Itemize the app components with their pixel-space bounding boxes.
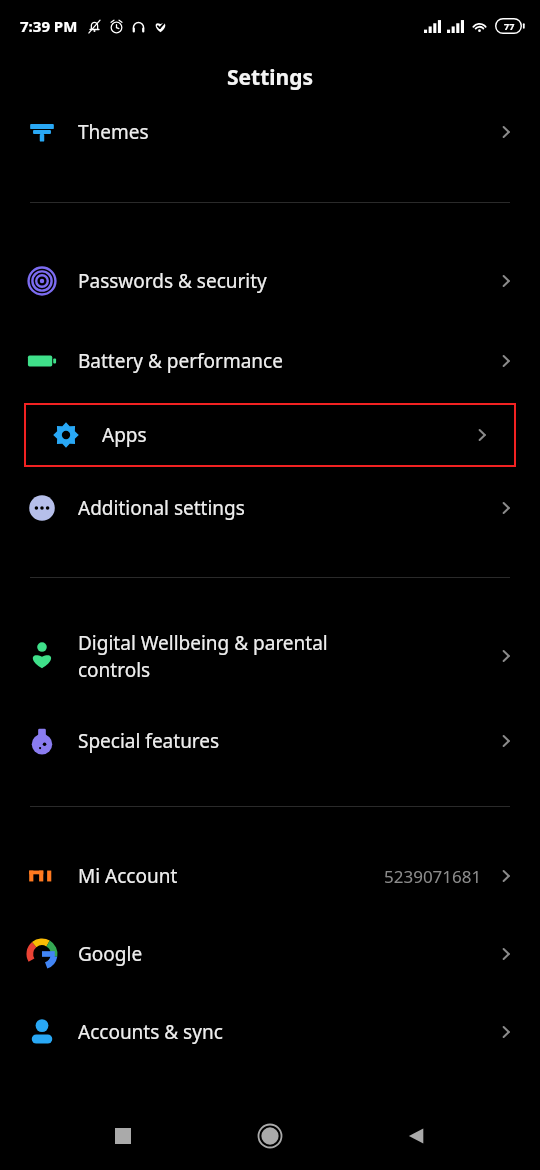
staticText: 5239071681 xyxy=(384,865,482,888)
staticText: Battery & performance xyxy=(78,348,283,374)
button[interactable]: Google xyxy=(0,915,540,993)
staticText: Settings xyxy=(227,63,314,92)
staticText: Apps xyxy=(102,422,147,448)
staticText: Accounts & sync xyxy=(78,1019,223,1045)
staticText: Themes xyxy=(78,119,149,145)
staticText: Passwords & security xyxy=(78,268,267,294)
button[interactable]: Mi Account xyxy=(0,837,540,915)
staticText: 77 xyxy=(504,20,515,32)
button[interactable]: Back xyxy=(393,1112,441,1160)
staticText: Mi Account xyxy=(78,863,178,889)
button[interactable]: Special features xyxy=(0,700,540,782)
button[interactable]: Battery & performance xyxy=(0,321,540,401)
staticText: Additional settings xyxy=(78,495,245,521)
staticText: Special features xyxy=(78,728,220,754)
button[interactable]: Accounts & sync xyxy=(0,993,540,1071)
button[interactable]: Recents xyxy=(99,1112,147,1160)
button[interactable]: Home xyxy=(246,1112,294,1160)
staticText: Digital Wellbeing & parental controls xyxy=(78,630,328,683)
button[interactable]: Passwords & security xyxy=(0,241,540,321)
staticText: Google xyxy=(78,941,143,967)
staticText: 7:39 PM xyxy=(20,16,78,36)
button[interactable]: Additional settings xyxy=(0,469,540,547)
button[interactable]: Digital Wellbeing & parental controls xyxy=(0,612,540,700)
button[interactable]: Themes xyxy=(0,102,540,162)
button[interactable]: Apps xyxy=(24,403,516,467)
